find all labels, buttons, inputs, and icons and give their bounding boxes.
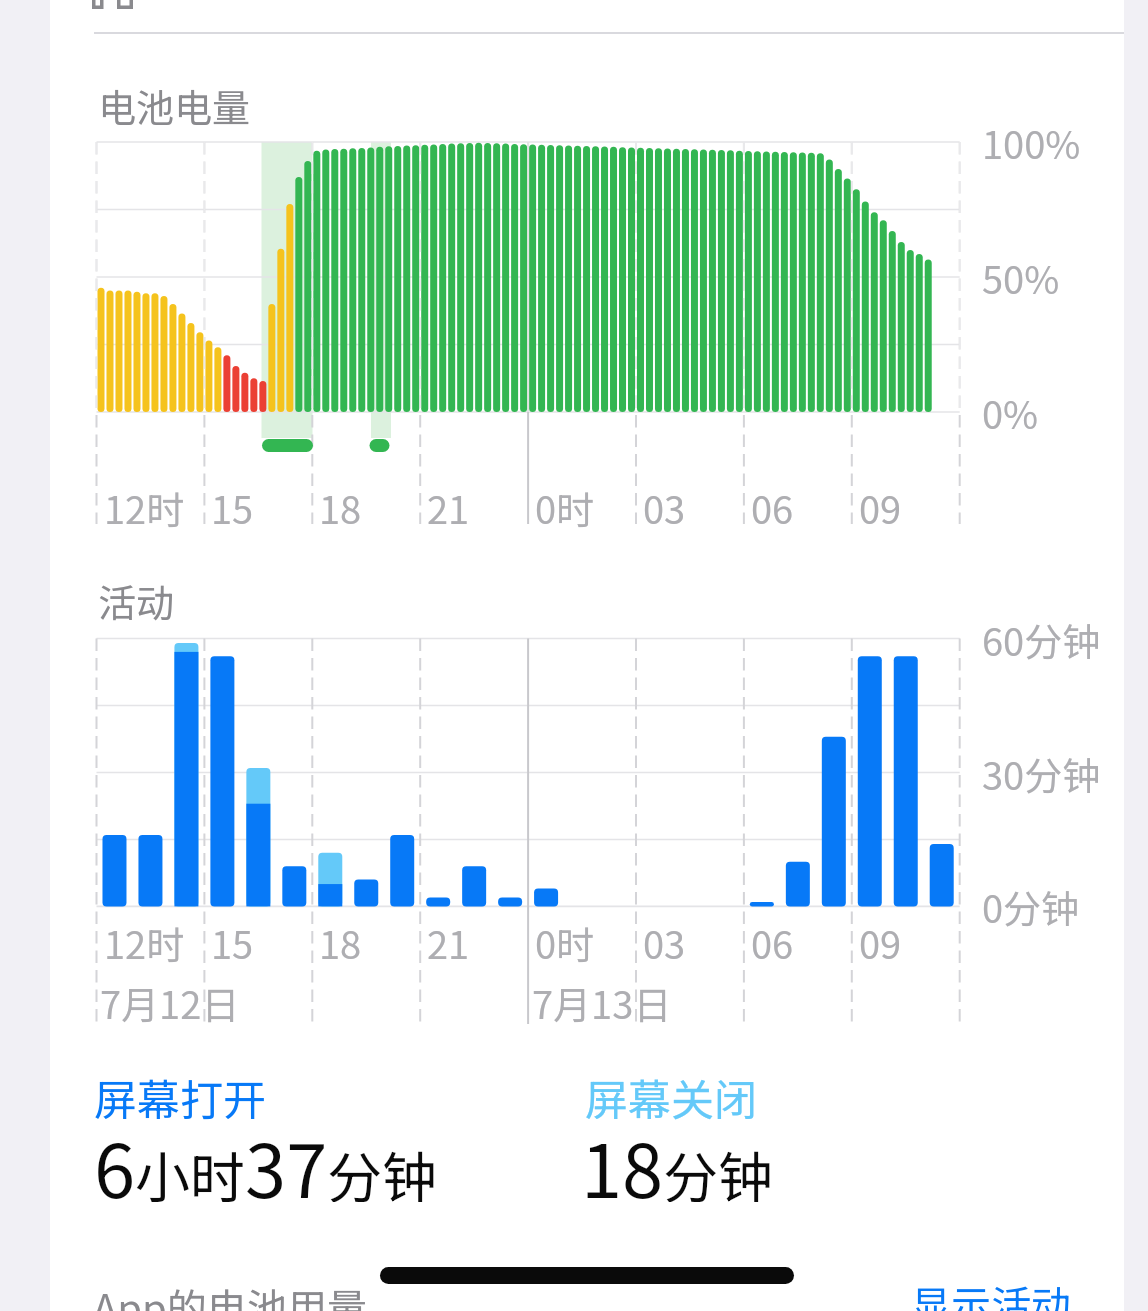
staticText: 09 bbox=[859, 915, 902, 970]
staticText: 60分钟 bbox=[982, 612, 1101, 667]
button[interactable]: 显示活动 bbox=[911, 1258, 1071, 1311]
staticText: 0时 bbox=[535, 480, 595, 535]
staticText: 12时 bbox=[104, 915, 185, 970]
staticText: 03 bbox=[643, 480, 686, 535]
staticText: 显示活动 bbox=[911, 1274, 1071, 1311]
staticText: 7月13日 bbox=[532, 975, 672, 1030]
staticText: 09 bbox=[859, 480, 902, 535]
staticText: 15 bbox=[211, 480, 254, 535]
staticText: 0% bbox=[982, 385, 1039, 440]
staticText: 06 bbox=[751, 915, 794, 970]
staticText: App的电池用量 bbox=[93, 1277, 367, 1311]
staticText: 活动 bbox=[98, 573, 175, 628]
button[interactable]: 屏幕打开 bbox=[94, 1052, 266, 1142]
button[interactable]: 屏幕关闭 bbox=[585, 1052, 757, 1142]
staticText: 15 bbox=[211, 915, 254, 970]
staticText: 06 bbox=[751, 480, 794, 535]
staticText: 03 bbox=[643, 915, 686, 970]
staticText: 7月12日 bbox=[100, 975, 240, 1030]
staticText: 50% bbox=[982, 250, 1060, 305]
staticText: 屏幕打开 bbox=[94, 1066, 266, 1128]
staticText: 电池电量 bbox=[98, 78, 251, 133]
staticText: 18 bbox=[319, 915, 362, 970]
staticText: 0分钟 bbox=[982, 879, 1080, 934]
staticText: 屏幕关闭 bbox=[585, 1066, 757, 1128]
staticText: 30分钟 bbox=[982, 746, 1101, 801]
staticText: 6小时37分钟 bbox=[94, 1112, 438, 1202]
staticText: 18分钟 bbox=[581, 1112, 774, 1202]
staticText: 100% bbox=[982, 115, 1081, 170]
staticText: 0时 bbox=[535, 915, 595, 970]
staticText: 12时 bbox=[104, 480, 185, 535]
staticText: 21 bbox=[427, 480, 470, 535]
staticText: 21 bbox=[427, 915, 470, 970]
staticText: 18 bbox=[319, 480, 362, 535]
